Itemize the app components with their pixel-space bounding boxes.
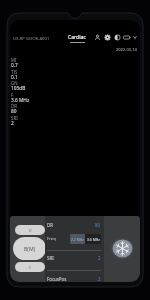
button[interactable]: FocusPos [47,269,101,282]
button[interactable]: Cardiac [68,34,86,43]
staticText: SRI [11,115,18,121]
button[interactable]: SRI [47,248,101,268]
button[interactable]: Settings [104,34,111,41]
staticText: 80 [11,108,17,115]
button[interactable]: Patient [94,34,101,41]
staticText: C [29,265,32,270]
staticText: 2 [11,120,14,127]
staticText: 0.7 [11,62,18,69]
staticText: 0.1 [11,74,18,81]
staticText: 3.6 MHz [87,237,100,242]
staticText: FocusPos [47,276,67,282]
staticText: B(M) [24,245,36,252]
staticText: GN [11,80,18,86]
button[interactable]: D [15,225,45,235]
staticText: 2 [98,276,101,282]
button[interactable]: Brightness [114,34,121,41]
staticText: 2 [98,255,101,261]
staticText: 105dB [11,85,26,92]
staticText: D [29,228,32,233]
staticText: 3.6 MHz [11,97,30,104]
staticText: 2022-03-14 [116,47,137,52]
button[interactable]: C [15,262,45,272]
button[interactable]: 3.6 MHz [85,234,101,244]
staticText: SRI [47,255,54,261]
staticText: 2.2 MHz [71,237,84,242]
staticText: Cardiac [68,34,86,41]
staticText: MI [11,57,17,63]
button[interactable]: 2.2 MHz [70,234,85,244]
staticText: UX-8P GOC9LA001 [13,36,50,42]
staticText: F [11,92,14,98]
staticText: DR [47,222,53,228]
button[interactable]: DR [47,217,101,232]
staticText: DR [11,103,17,109]
staticText: TIS [11,69,18,75]
button[interactable]: Freeze [111,238,134,259]
staticText: Freq [47,236,56,242]
staticText: 80 [95,222,101,228]
button[interactable]: B(M) [13,237,46,260]
